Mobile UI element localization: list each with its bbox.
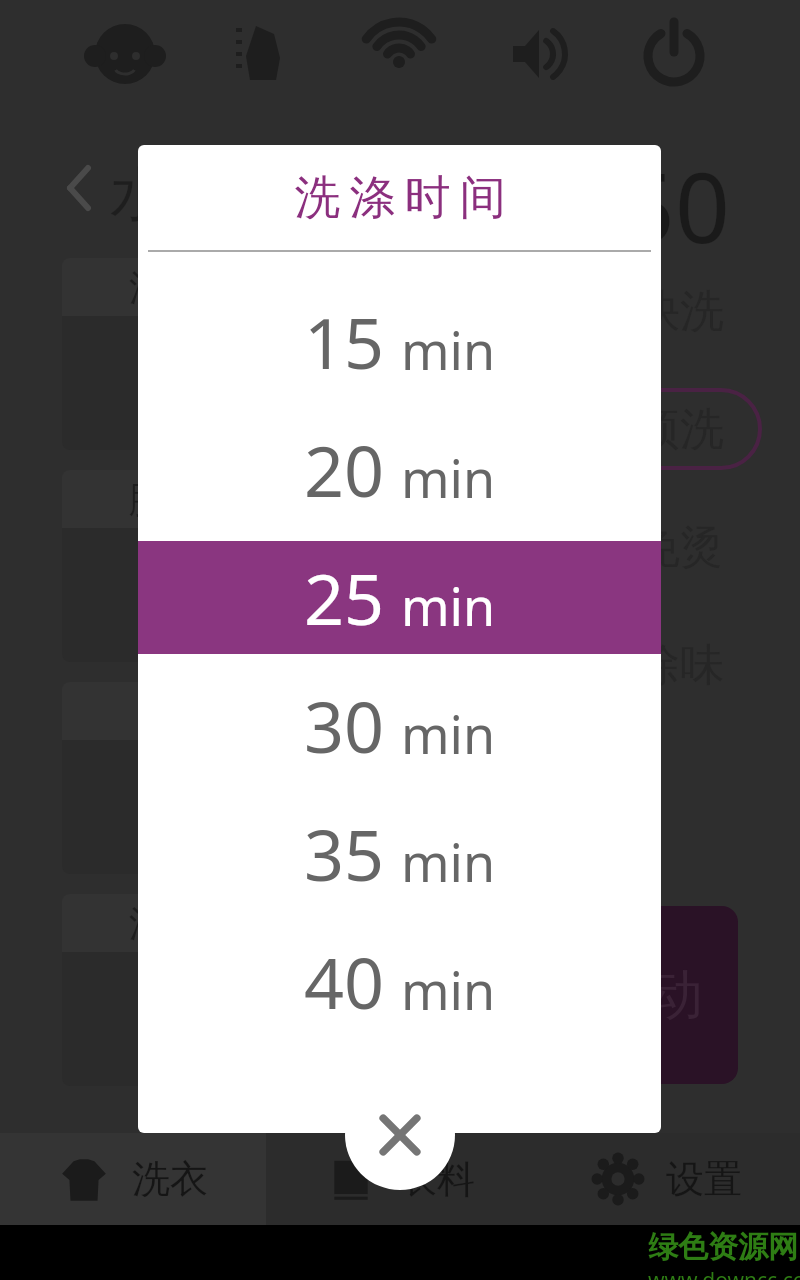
staticText: 1 bbox=[176, 537, 226, 654]
staticText: 洗涤时间 bbox=[290, 169, 510, 227]
staticText: 除味 bbox=[636, 638, 724, 693]
staticText: 绿色资源网 bbox=[648, 1228, 798, 1266]
button[interactable]: 衣料 bbox=[266, 1133, 533, 1225]
staticText: 设置 bbox=[666, 1155, 742, 1203]
staticText: www.downcc.com bbox=[648, 1266, 800, 1280]
staticText: min bbox=[401, 826, 496, 897]
button[interactable]: 启动 bbox=[560, 906, 738, 1084]
staticText: min bbox=[401, 954, 496, 1025]
staticText: 洗衣 bbox=[132, 1155, 208, 1203]
staticText: 20 bbox=[304, 422, 385, 517]
button[interactable]: 30 bbox=[138, 669, 661, 782]
staticText: 免烫 bbox=[636, 520, 724, 575]
button[interactable]: 快洗 bbox=[600, 272, 760, 350]
staticText: 污渍程度 bbox=[129, 901, 273, 946]
button[interactable]: 洗衣 bbox=[0, 1133, 266, 1225]
staticText: 衣料 bbox=[399, 1155, 475, 1203]
staticText: min bbox=[401, 314, 496, 385]
staticText: 25 bbox=[304, 550, 385, 645]
button[interactable]: 除味 bbox=[600, 626, 760, 704]
staticText: min bbox=[401, 698, 496, 769]
staticText: 30 bbox=[304, 678, 385, 773]
staticText: 水洗 bbox=[110, 158, 226, 231]
staticText: 15 bbox=[304, 294, 385, 389]
staticText: min bbox=[401, 570, 496, 641]
button[interactable]: 预洗 bbox=[600, 390, 760, 468]
staticText: 40 bbox=[304, 934, 385, 1029]
staticText: min bbox=[401, 442, 496, 513]
button[interactable]: 免烫 bbox=[600, 508, 760, 586]
button[interactable]: 20 bbox=[138, 413, 661, 526]
staticText: 35 bbox=[304, 806, 385, 901]
staticText: 预洗 bbox=[636, 402, 724, 457]
staticText: 启动 bbox=[595, 961, 703, 1029]
staticText: 50 bbox=[620, 140, 730, 271]
staticText: 脱水时间 bbox=[129, 477, 273, 522]
button[interactable]: 35 bbox=[138, 797, 661, 910]
button[interactable]: 15 bbox=[138, 285, 661, 398]
button[interactable]: 40 bbox=[138, 925, 661, 1038]
button[interactable]: 设置 bbox=[533, 1133, 800, 1225]
staticText: 洗涤时间 bbox=[129, 265, 273, 310]
staticText: 快洗 bbox=[636, 284, 724, 339]
button[interactable]: Close bbox=[345, 1080, 455, 1190]
button[interactable]: 25 bbox=[138, 541, 661, 654]
